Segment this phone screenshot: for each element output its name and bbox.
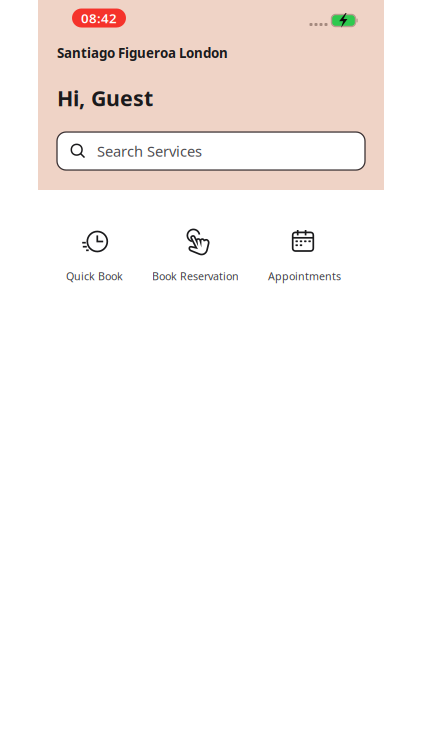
button[interactable]: Book Reservation [152, 228, 239, 283]
staticText: Book Reservation [152, 269, 239, 283]
staticText: Santiago Figueroa London [57, 44, 228, 62]
staticText: Hi, Guest [57, 84, 153, 112]
staticText: Search Services [97, 141, 202, 161]
staticText: Quick Book [66, 269, 123, 283]
button[interactable]: Quick Book [66, 228, 123, 283]
button[interactable]: Search Services [57, 132, 365, 170]
button[interactable]: Appointments [268, 228, 341, 283]
staticText: Appointments [268, 269, 341, 283]
staticText: 08:42 [81, 9, 117, 27]
